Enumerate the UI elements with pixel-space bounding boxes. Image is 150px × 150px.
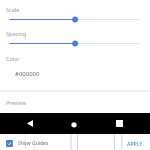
staticText: Preview	[6, 99, 27, 106]
staticText: Scale	[6, 6, 20, 13]
button[interactable]	[0, 39, 150, 48]
button[interactable]: #000000	[0, 70, 150, 78]
button[interactable]: Back	[26, 113, 33, 134]
staticText: #000000	[15, 70, 40, 78]
button[interactable]	[0, 15, 150, 24]
button[interactable]: Recents	[116, 113, 123, 134]
button[interactable]: APPLY	[126, 138, 144, 149]
staticText: APPLY	[127, 140, 143, 147]
staticText: Show Guides	[18, 140, 49, 147]
button[interactable]: Home	[70, 113, 78, 134]
staticText: Color	[6, 55, 20, 62]
staticText: Spacing	[6, 30, 27, 37]
button[interactable]: Show Guides	[6, 140, 49, 147]
